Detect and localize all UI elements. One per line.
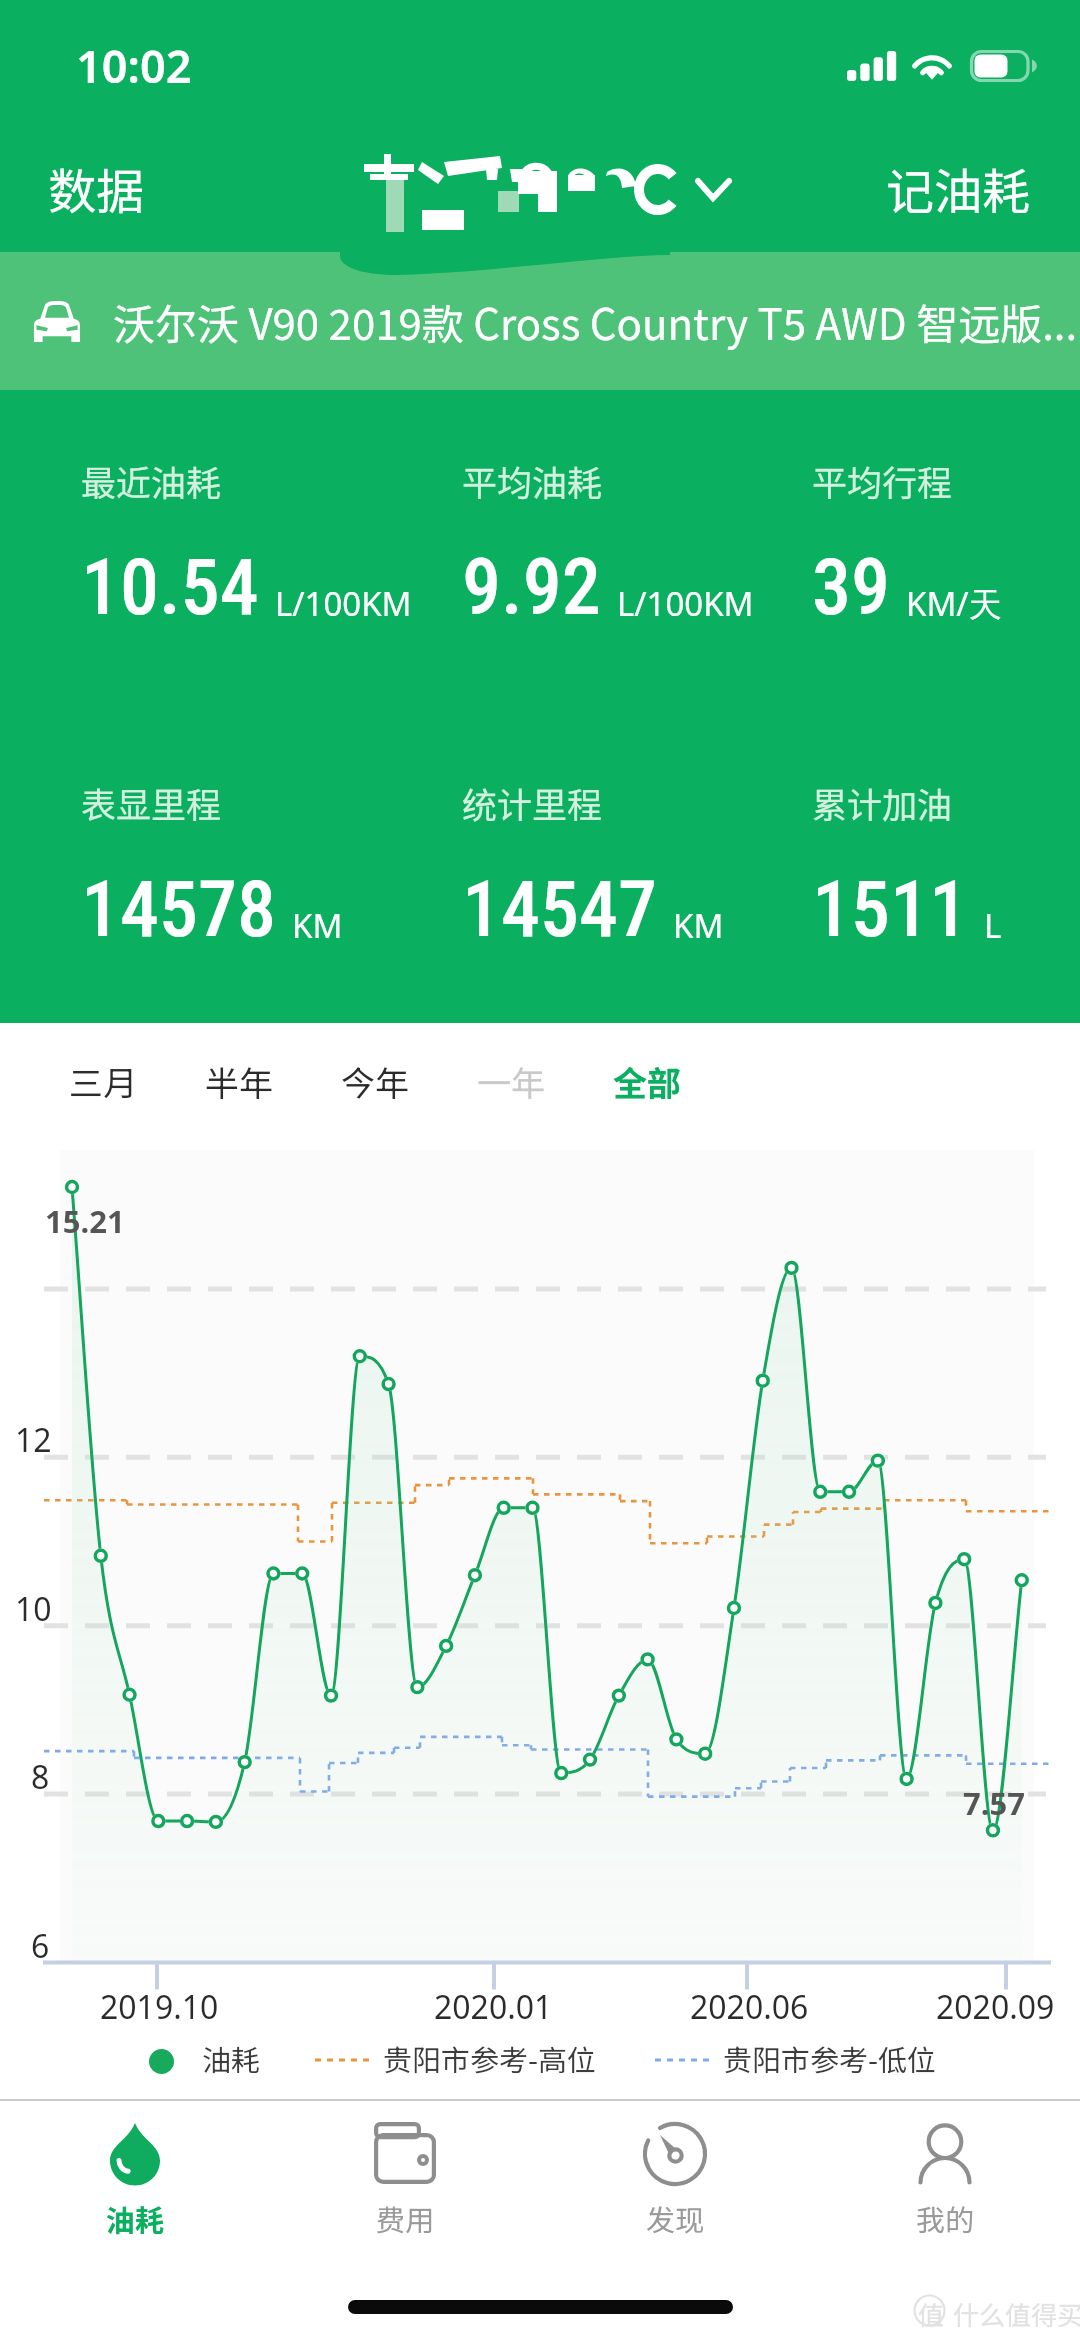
staticText: L xyxy=(984,903,1002,948)
staticText: KM/天 xyxy=(906,581,1002,626)
staticText: 平均油耗 xyxy=(462,455,603,506)
button[interactable]: 油耗 xyxy=(0,2101,270,2241)
button[interactable]: 我的 xyxy=(810,2101,1080,2241)
staticText: 油耗 xyxy=(106,2197,165,2239)
staticText: 10 xyxy=(15,1587,52,1631)
staticText: 我的 xyxy=(916,2197,975,2239)
staticText: 12 xyxy=(15,1418,52,1462)
staticText: 2020.09 xyxy=(936,1985,1055,2029)
staticText: 最近油耗 xyxy=(81,455,222,506)
staticText: 一年 xyxy=(477,1057,545,1106)
staticText: 三月 xyxy=(69,1057,137,1106)
button[interactable]: 沃尔沃 V90 2019款 Cross Country T5 AWD 智远版..… xyxy=(0,252,1080,390)
staticText: 贵阳市参考-低位 xyxy=(723,2037,937,2079)
button[interactable]: 半年 xyxy=(179,1033,299,1130)
button[interactable]: 记油耗 xyxy=(860,131,1057,245)
staticText: KM xyxy=(673,903,724,948)
staticText: L/100KM xyxy=(617,581,754,626)
staticText: 贵阳市参考-高位 xyxy=(383,2037,597,2079)
staticText: 半年 xyxy=(205,1057,273,1106)
staticText: 累计加油 xyxy=(812,777,953,828)
staticText: 9.92 xyxy=(462,542,601,633)
button[interactable]: 一年 xyxy=(451,1033,571,1130)
button[interactable]: 费用 xyxy=(270,2101,540,2241)
staticText: 数据 xyxy=(48,153,145,223)
staticText: 费用 xyxy=(376,2197,435,2239)
staticText: 全部 xyxy=(613,1057,681,1106)
staticText: 15.21 xyxy=(45,1200,125,1242)
staticText: 2020.01 xyxy=(434,1985,553,2029)
staticText: 14547 xyxy=(462,864,657,955)
staticText: 发现 xyxy=(646,2197,705,2239)
staticText: 10:02 xyxy=(76,35,192,96)
staticText: 1511 xyxy=(812,864,968,955)
button[interactable]: 发现 xyxy=(540,2101,810,2241)
button[interactable]: 三月 xyxy=(43,1033,163,1130)
staticText: 沃尔沃 V90 2019款 Cross Country T5 AWD 智远版..… xyxy=(113,291,1078,352)
staticText: 8 xyxy=(31,1755,50,1799)
button[interactable]: 数据 xyxy=(22,131,171,245)
staticText: 14578 xyxy=(81,864,276,955)
staticText: 2019.10 xyxy=(100,1985,219,2029)
staticText: 记油耗 xyxy=(886,153,1031,223)
staticText: 表显里程 xyxy=(81,777,222,828)
staticText: 今年 xyxy=(341,1057,409,1106)
button[interactable]: Select vehicle xyxy=(340,140,750,252)
staticText: 6 xyxy=(31,1924,50,1968)
staticText: 39 xyxy=(812,542,890,633)
staticText: 2020.06 xyxy=(690,1985,809,2029)
button[interactable]: 全部 xyxy=(587,1033,707,1130)
staticText: KM xyxy=(292,903,343,948)
button[interactable]: 今年 xyxy=(315,1033,435,1130)
staticText: 10.54 xyxy=(81,542,259,633)
staticText: 统计里程 xyxy=(462,777,603,828)
staticText: 7.57 xyxy=(963,1782,1025,1824)
staticText: 什么值得买 xyxy=(953,2295,1080,2333)
staticText: 油耗 xyxy=(202,2037,261,2079)
staticText: 值 xyxy=(918,2295,945,2333)
staticText: 平均行程 xyxy=(812,455,953,506)
staticText: L/100KM xyxy=(275,581,412,626)
